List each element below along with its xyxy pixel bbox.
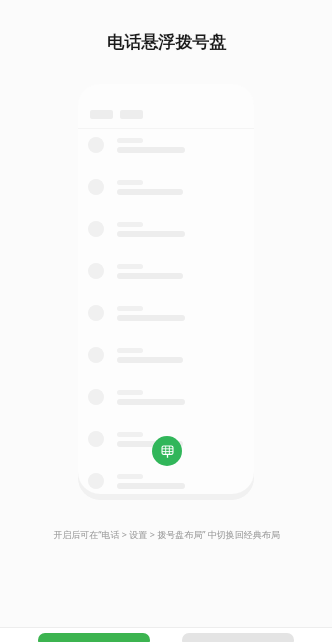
button[interactable] [88,473,254,489]
button[interactable] [182,633,294,642]
button[interactable] [38,633,150,642]
button[interactable] [88,221,254,237]
button[interactable] [88,263,254,279]
button[interactable] [88,137,254,153]
button[interactable]: Open dialpad [152,436,182,466]
button[interactable] [88,389,254,405]
button[interactable] [88,179,254,195]
button[interactable] [88,431,254,447]
button[interactable] [88,305,254,321]
staticText: 开启后可在“电话 > 设置 > 拨号盘布局” 中切换回经典布局 [53,528,280,540]
staticText: 电话悬浮拨号盘 [107,32,226,53]
button[interactable] [88,347,254,363]
